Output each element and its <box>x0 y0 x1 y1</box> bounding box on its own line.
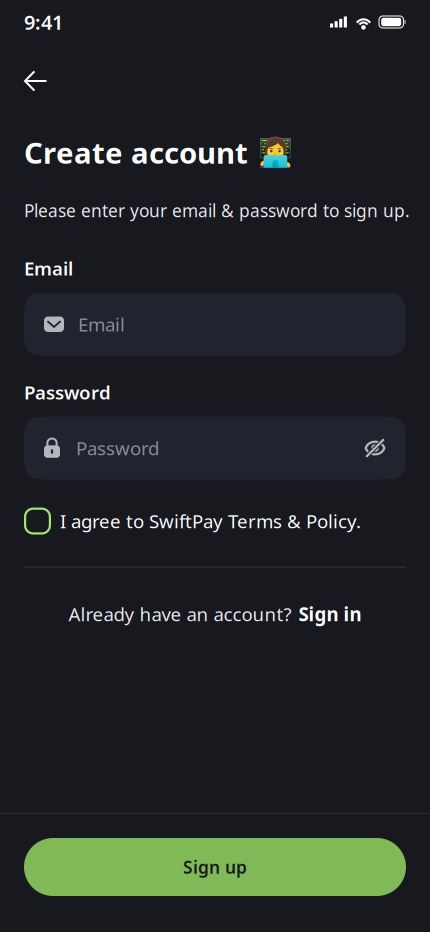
staticText: Sign in <box>298 602 361 626</box>
button[interactable]: Already have an account? <box>0 568 430 638</box>
staticText: Please enter your email & password to si… <box>24 199 410 222</box>
staticText: Email <box>78 312 125 337</box>
button[interactable]: I agree to SwiftPay Terms & Policy. <box>0 480 430 543</box>
button[interactable]: Sign up <box>0 814 430 932</box>
staticText: Email <box>24 256 73 281</box>
button[interactable]: Back <box>0 44 61 106</box>
staticText: Sign up <box>183 855 247 878</box>
staticText: Password <box>24 380 111 405</box>
button[interactable]: Show password <box>364 437 386 459</box>
staticText: Create account <box>24 133 248 172</box>
staticText: 9:41 <box>24 9 63 35</box>
staticText: 👩‍💻 <box>258 136 293 168</box>
staticText: I agree to SwiftPay Terms & Policy. <box>60 509 361 533</box>
staticText: Password <box>76 436 159 460</box>
staticText: Already have an account? <box>68 602 291 626</box>
